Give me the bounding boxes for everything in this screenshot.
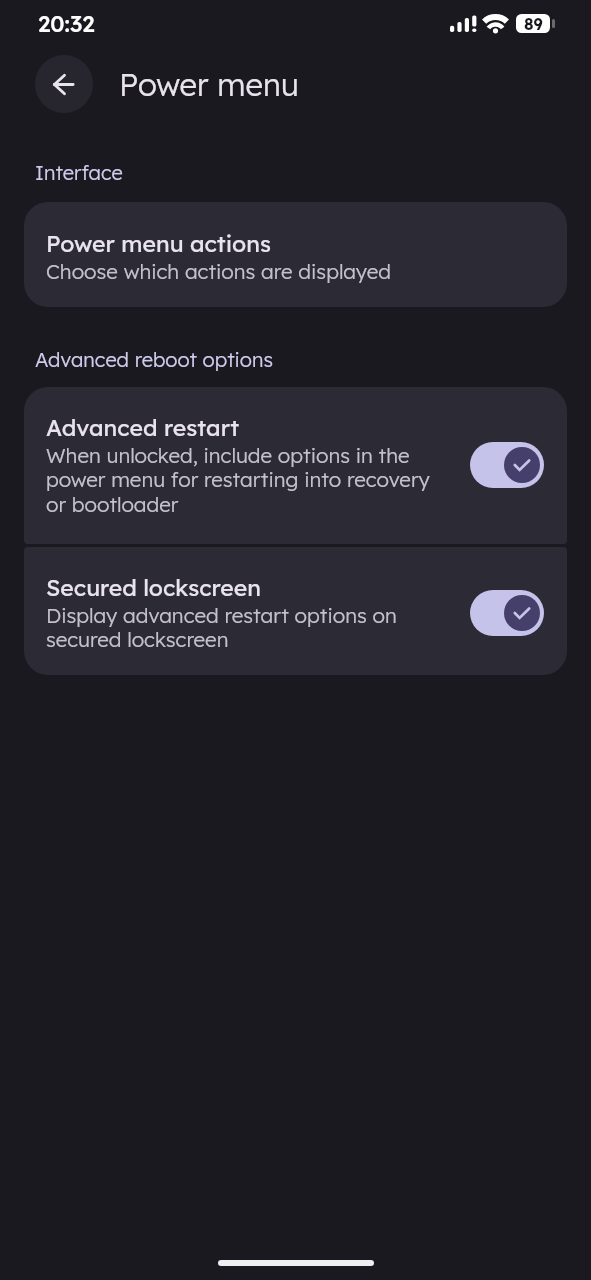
staticText: Display advanced restart options on secu… <box>46 602 450 652</box>
staticText: Choose which actions are displayed <box>46 258 392 284</box>
button[interactable]: Power menu actions <box>24 202 567 307</box>
staticText: Advanced restart <box>46 413 240 442</box>
staticText: Power menu actions <box>46 229 271 258</box>
staticText: Advanced reboot options <box>35 347 273 372</box>
staticText: 89 <box>524 14 543 33</box>
button[interactable]: Secured lockscreen <box>24 547 567 675</box>
button[interactable]: Advanced restart <box>24 387 567 544</box>
button[interactable]: Toggle <box>470 590 544 636</box>
staticText: Secured lockscreen <box>46 573 261 602</box>
staticText: Interface <box>35 160 123 185</box>
staticText: Power menu <box>119 65 299 104</box>
staticText: 20:32 <box>38 9 95 37</box>
staticText: When unlocked, include options in the po… <box>46 442 450 517</box>
button[interactable]: Toggle <box>470 442 544 488</box>
button[interactable]: Back <box>35 55 93 113</box>
